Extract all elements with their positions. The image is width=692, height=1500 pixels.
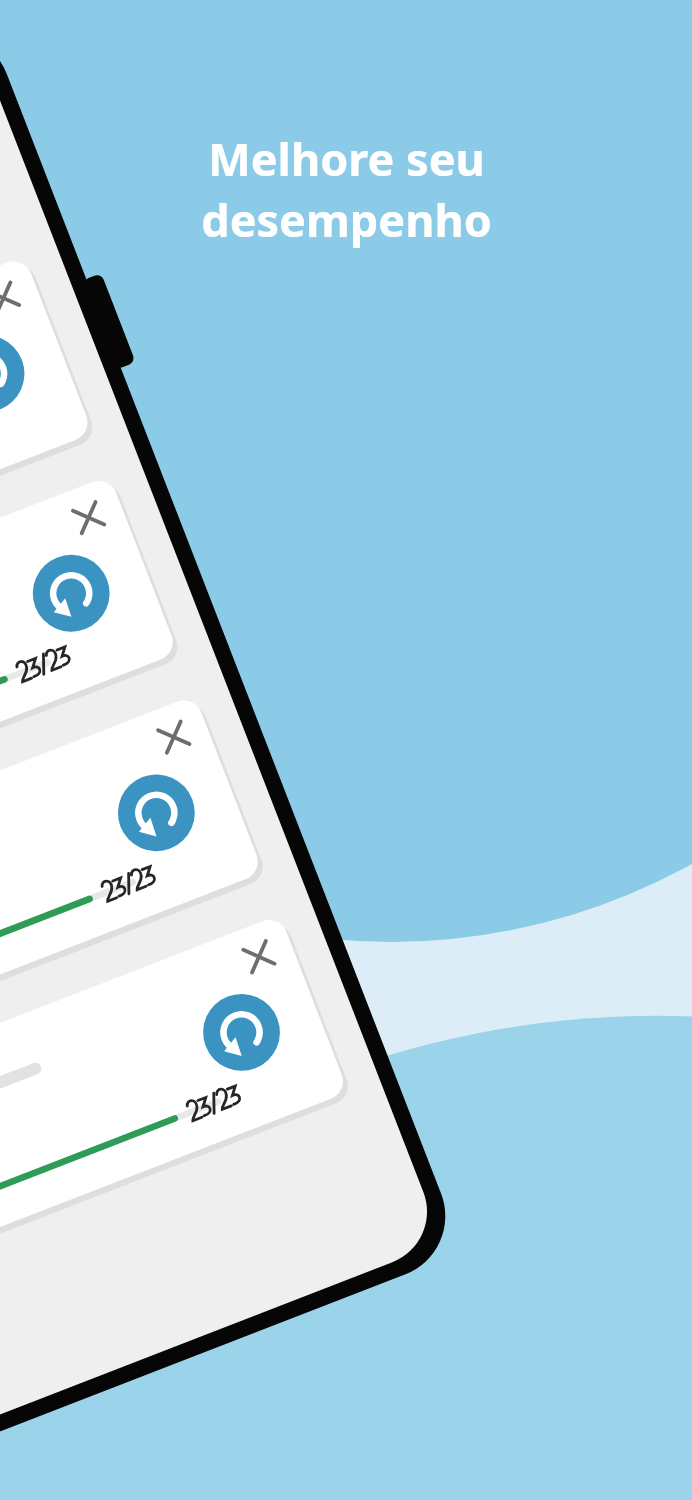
button[interactable]: Melhore seu desempenho	[0, 0, 692, 1500]
staticText: desempenho	[201, 189, 492, 250]
staticText: Melhore seu	[208, 128, 485, 189]
